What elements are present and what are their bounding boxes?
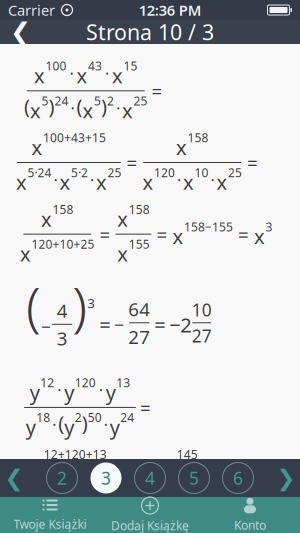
button[interactable]: 3 <box>88 460 124 496</box>
staticText: x <box>142 169 153 195</box>
staticText: 50 <box>88 409 102 425</box>
staticText: x <box>59 169 70 195</box>
staticText: · <box>57 379 61 401</box>
staticText: 18+100+24 <box>156 481 219 497</box>
staticText: = <box>154 311 165 338</box>
staticText: 2 <box>75 409 82 425</box>
staticText: 2 <box>107 93 114 109</box>
staticText: = <box>129 467 140 491</box>
staticText: 12+120+13 <box>44 446 107 462</box>
staticText: = <box>224 467 235 491</box>
staticText: = <box>156 222 167 247</box>
staticText: y <box>95 485 105 512</box>
staticText: ) <box>48 93 54 119</box>
staticText: 4 <box>57 298 68 323</box>
staticText: y <box>64 379 74 405</box>
staticText: 145 <box>25 518 46 533</box>
staticText: 12 <box>40 375 54 390</box>
button[interactable]: 4 <box>132 460 168 496</box>
staticText: 3 <box>265 219 272 235</box>
staticText: −2 <box>169 311 191 338</box>
staticText: − <box>41 315 51 338</box>
staticText: y <box>145 485 155 512</box>
button[interactable]: 2 <box>44 460 80 496</box>
staticText: = <box>99 222 110 247</box>
staticText: x <box>96 169 107 195</box>
staticText: 27 <box>128 324 150 349</box>
staticText: x <box>117 240 128 267</box>
staticText: 24 <box>54 93 68 109</box>
staticText: · <box>52 414 56 435</box>
staticText: y <box>33 450 43 477</box>
staticText: 158 <box>187 130 208 146</box>
staticText: y <box>30 379 40 405</box>
staticText: x <box>34 62 45 89</box>
staticText: · <box>177 169 181 190</box>
staticText: y <box>26 414 36 440</box>
staticText: 3 <box>101 466 111 489</box>
button[interactable]: Back <box>0 20 50 44</box>
staticText: 158 <box>129 201 150 217</box>
staticText: · <box>47 486 51 507</box>
staticText: x <box>82 97 93 124</box>
staticText: ( <box>24 93 30 119</box>
staticText: y <box>14 522 24 533</box>
staticText: 10 <box>192 298 212 321</box>
staticText: x <box>254 223 265 250</box>
staticText: y <box>64 414 74 440</box>
staticText: x <box>76 62 87 89</box>
staticText: y <box>110 414 120 440</box>
staticText: ❯ <box>276 465 295 491</box>
staticText: ❮ <box>10 18 31 46</box>
staticText: x <box>122 97 133 124</box>
button[interactable]: 5 <box>176 460 212 496</box>
staticText: 15 <box>123 58 137 74</box>
staticText: ) <box>101 93 107 119</box>
button[interactable]: Previous page <box>0 459 36 497</box>
staticText: x <box>172 223 183 250</box>
staticText: x <box>112 62 123 89</box>
staticText: 158 <box>52 201 73 217</box>
staticText: 100+43+15 <box>43 130 106 146</box>
staticText: 27 <box>192 324 212 347</box>
staticText: = <box>247 150 258 175</box>
staticText: Konto <box>234 517 266 533</box>
staticText: 13 <box>116 375 130 390</box>
staticText: ( <box>26 270 41 341</box>
staticText: y <box>166 450 176 477</box>
staticText: 5 <box>41 93 48 109</box>
staticText: y <box>20 485 30 512</box>
staticText: x <box>216 169 227 195</box>
staticText: 25 <box>107 164 121 180</box>
staticText: · <box>116 98 120 119</box>
staticText: ( <box>58 409 64 436</box>
staticText: 3 <box>57 326 68 351</box>
staticText: 25 <box>133 93 147 109</box>
staticText: 6 <box>233 466 243 489</box>
button[interactable]: Konto <box>200 497 300 533</box>
staticText: · <box>53 169 57 190</box>
button[interactable]: Next page <box>264 459 300 497</box>
staticText: 120 <box>154 164 175 180</box>
staticText: x <box>30 97 41 124</box>
staticText: 158−155 <box>184 219 233 235</box>
staticText: ) <box>82 409 88 436</box>
staticText: 18 <box>36 409 50 425</box>
staticText: x <box>20 240 31 267</box>
staticText: y <box>106 379 116 405</box>
staticText: Strona 10 / 3 <box>86 18 214 46</box>
button[interactable]: Twoje Książki <box>0 497 100 533</box>
staticText: 5 <box>94 93 101 109</box>
staticText: x <box>31 134 42 160</box>
staticText: 2 <box>57 466 67 489</box>
staticText: Carrier <box>8 0 55 20</box>
staticText: x <box>117 206 128 232</box>
staticText: 5·24 <box>27 164 51 180</box>
staticText: = <box>140 395 151 420</box>
staticText: 120+10+25 <box>31 236 94 252</box>
button[interactable]: 6 <box>220 460 256 496</box>
staticText: x <box>16 169 27 195</box>
staticText: · <box>99 379 103 401</box>
button[interactable]: Dodaj Książkę <box>100 497 200 533</box>
staticText: · <box>70 98 74 119</box>
